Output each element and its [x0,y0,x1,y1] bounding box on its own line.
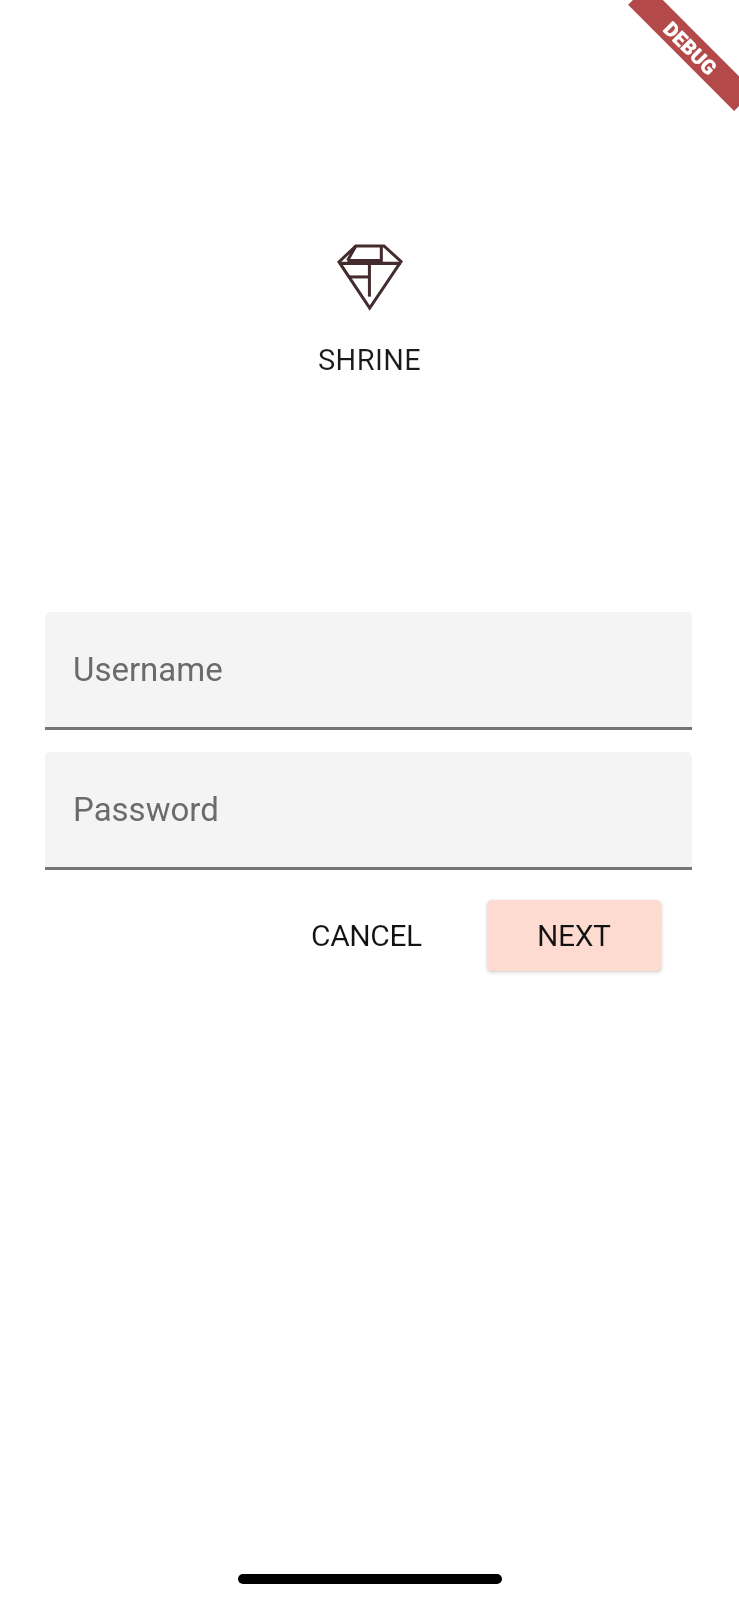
button[interactable]: CANCEL [289,900,444,971]
button[interactable]: Password [45,752,692,870]
button[interactable]: NEXT [487,900,661,971]
button[interactable]: Username [45,612,692,730]
staticText: Username [73,650,223,689]
staticText: Password [73,790,219,829]
staticText: DEBUG [659,17,722,80]
other: Debug banner [589,0,739,150]
staticText: NEXT [537,918,611,953]
staticText: SHRINE [318,343,422,377]
staticText: CANCEL [311,918,422,953]
